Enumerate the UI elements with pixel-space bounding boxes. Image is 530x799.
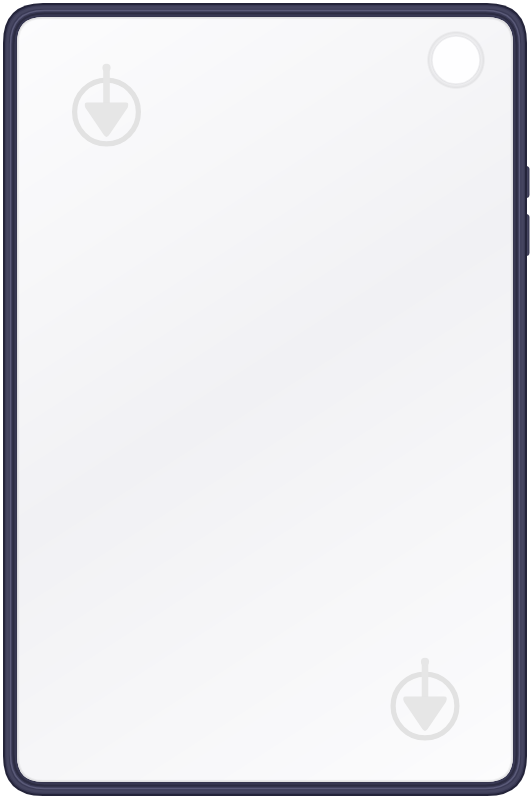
button[interactable]: Tablet bumper case product photo bbox=[0, 0, 530, 799]
